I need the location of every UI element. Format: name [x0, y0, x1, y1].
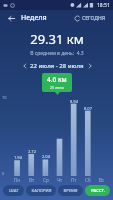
staticText: 29.31 км: [30, 30, 84, 48]
button[interactable]: Previous week: [19, 60, 30, 71]
staticText: 2.72: [28, 149, 36, 154]
staticText: ШАГ: [9, 188, 19, 194]
button[interactable]: Back: [5, 12, 17, 24]
staticText: Пн: [14, 177, 21, 183]
staticText: Вс: [99, 177, 105, 183]
staticText: Вт: [29, 177, 35, 183]
staticText: 8.07: [84, 106, 92, 111]
staticText: 4.6 км: [47, 75, 67, 84]
staticText: Неделя: [21, 13, 47, 23]
staticText: Чт: [57, 177, 63, 183]
staticText: В среднем в день: 4.3: [30, 50, 84, 57]
button[interactable]: РАССТ.: [85, 185, 110, 196]
button[interactable]: ВРЕМЯ: [58, 185, 83, 196]
staticText: Сб: [85, 177, 91, 183]
staticText: Ср: [43, 177, 49, 183]
staticText: КАЛОРИЯ: [31, 188, 52, 194]
staticText: 0: [2, 171, 5, 176]
staticText: 8.94: [70, 99, 78, 104]
staticText: 2.04: [42, 154, 50, 159]
staticText: РАССТ.: [91, 188, 105, 194]
button[interactable]: ШАГ: [3, 185, 24, 196]
staticText: 25 июля: [50, 85, 64, 90]
staticText: СЕГОДНЯ: [82, 15, 106, 22]
staticText: 1.94: [14, 155, 22, 160]
button[interactable]: СЕГОДНЯ: [73, 13, 108, 24]
button[interactable]: Next week: [84, 60, 95, 71]
staticText: ВРЕМЯ: [63, 188, 78, 194]
staticText: Пт: [71, 177, 77, 183]
staticText: 22 июля - 28 июля: [30, 62, 84, 70]
button[interactable]: КАЛОРИЯ: [26, 185, 56, 196]
staticText: 18:51: [97, 2, 110, 9]
staticText: 10: [2, 95, 7, 100]
